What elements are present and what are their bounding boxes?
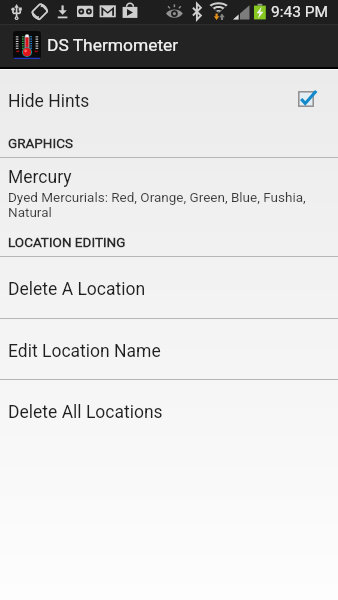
staticText: DS Thermometer <box>47 35 179 55</box>
staticText: GRAPHICS <box>8 135 73 151</box>
button[interactable]: Delete A Location <box>0 257 338 318</box>
staticText: Edit Location Name <box>8 341 161 362</box>
button[interactable]: Hide Hints <box>0 70 338 129</box>
staticText: LOCATION EDITING <box>8 234 126 250</box>
other: App icon <box>13 31 41 59</box>
staticText: Mercury <box>8 167 72 188</box>
staticText: 9:43 PM <box>271 3 329 21</box>
button[interactable]: Mercury <box>0 158 338 228</box>
staticText: Dyed Mercurials: Red, Orange, Green, Blu… <box>8 189 325 220</box>
button[interactable]: Edit Location Name <box>0 319 338 379</box>
staticText: Delete A Location <box>8 279 146 300</box>
staticText: Delete All Locations <box>8 402 163 423</box>
staticText: Hide Hints <box>8 91 90 112</box>
button[interactable]: Delete All Locations <box>0 380 338 441</box>
